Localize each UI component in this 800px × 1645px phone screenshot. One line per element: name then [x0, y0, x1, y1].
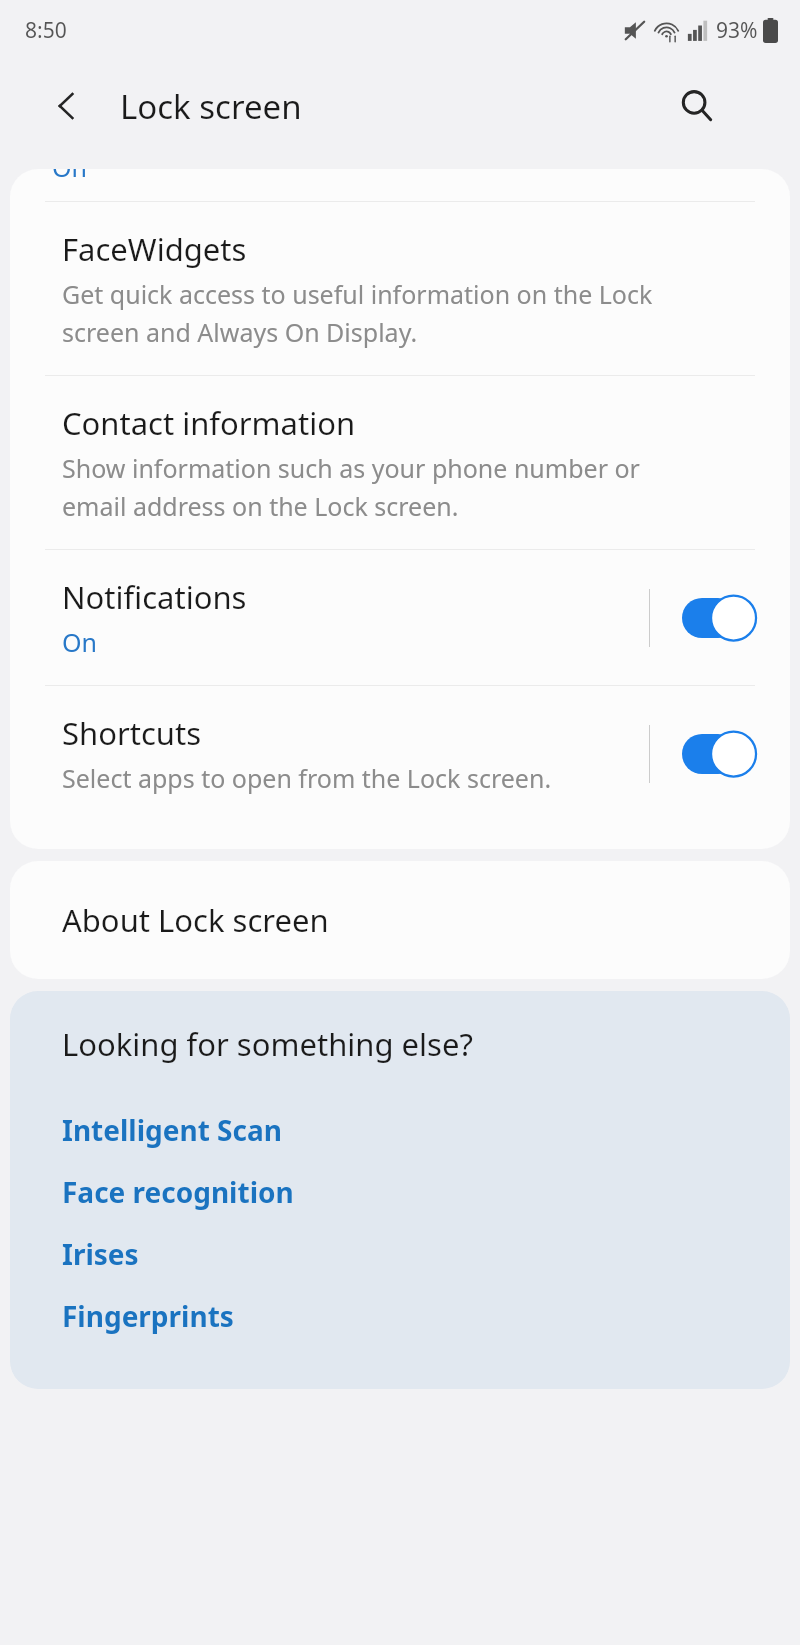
staticText: Shortcuts [62, 712, 202, 754]
staticText: Lock screen [120, 84, 302, 129]
button[interactable]: Back [36, 75, 98, 137]
staticText: About Lock screen [62, 899, 329, 941]
button[interactable]: Toggle [682, 593, 764, 643]
staticText: Intelligent Scan [62, 1111, 282, 1149]
staticText: Get quick access to useful information o… [62, 277, 653, 311]
button[interactable]: Irises [10, 1223, 790, 1285]
staticText: Fingerprints [62, 1297, 234, 1335]
button[interactable]: Intelligent Scan [10, 1099, 790, 1161]
button[interactable]: About Lock screen [10, 861, 790, 979]
button[interactable]: Contact information [10, 376, 790, 549]
staticText: FaceWidgets [62, 228, 247, 270]
button[interactable]: Face recognition [10, 1161, 790, 1223]
staticText: Select apps to open from the Lock screen… [62, 761, 552, 795]
staticText: On [52, 169, 87, 182]
staticText: 8:50 [25, 16, 67, 45]
button[interactable]: Search [667, 76, 727, 136]
staticText: Looking for something else? [62, 1023, 473, 1065]
staticText: Notifications [62, 576, 247, 618]
button[interactable]: Fingerprints [10, 1285, 790, 1347]
staticText: Irises [62, 1235, 139, 1273]
staticText: screen and Always On Display. [62, 315, 418, 349]
button[interactable]: Shortcuts [10, 686, 790, 821]
staticText: email address on the Lock screen. [62, 489, 459, 523]
button[interactable]: Notifications [10, 550, 790, 685]
staticText: Contact information [62, 402, 356, 444]
button[interactable]: FaceWidgets [10, 202, 790, 375]
staticText: Show information such as your phone numb… [62, 451, 640, 485]
button[interactable]: Toggle [682, 729, 764, 779]
staticText: Face recognition [62, 1173, 294, 1211]
staticText: On [62, 625, 97, 659]
staticText: 93% [716, 16, 758, 45]
